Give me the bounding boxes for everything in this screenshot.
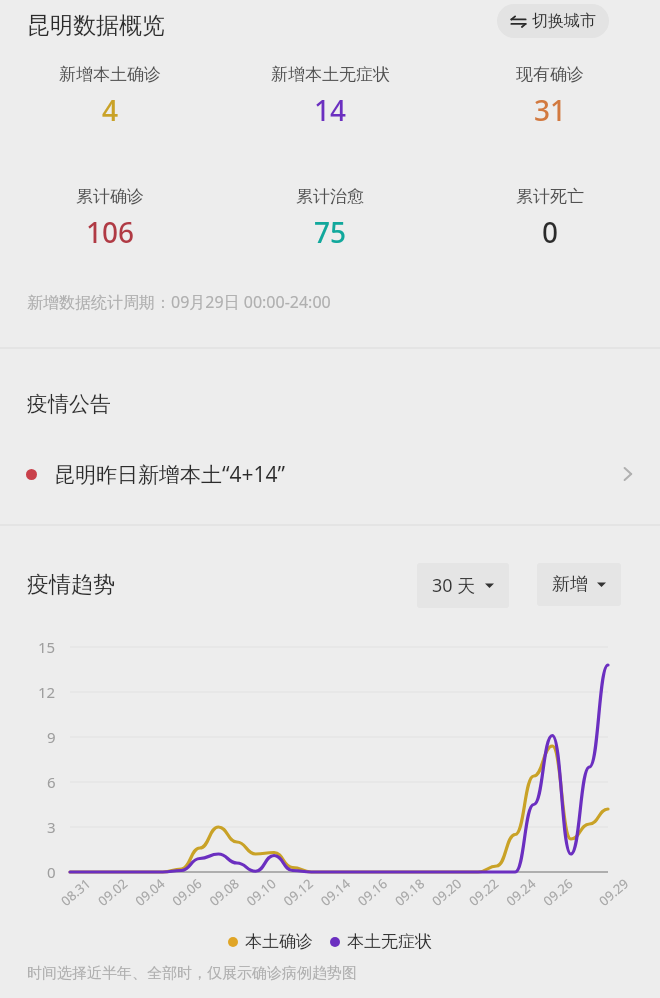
staticText: 疫情公告	[27, 391, 111, 417]
staticText: 昆明昨日新增本土“4+14”	[54, 460, 286, 489]
staticText: 累计治愈	[296, 186, 364, 207]
staticText: 新增本土确诊	[59, 64, 161, 85]
staticText: 累计死亡	[516, 186, 584, 207]
button[interactable]: 累计治愈	[220, 186, 440, 251]
button[interactable]: 累计确诊	[0, 186, 220, 251]
staticText: 切换城市	[532, 11, 596, 31]
staticText: 现有确诊	[516, 64, 584, 85]
staticText: 14	[314, 91, 347, 129]
button[interactable]: 累计死亡	[440, 186, 660, 251]
staticText: 106	[86, 213, 135, 251]
staticText: 昆明数据概览	[27, 11, 165, 40]
button[interactable]: 切换城市	[497, 4, 609, 38]
button[interactable]: 新增	[537, 563, 621, 606]
staticText: 疫情趋势	[27, 571, 115, 599]
button[interactable]: 新增本土确诊	[0, 64, 220, 129]
staticText: 累计确诊	[76, 186, 144, 207]
button[interactable]: 新增本土无症状	[220, 64, 440, 129]
staticText: 4	[102, 91, 119, 129]
staticText: 0	[542, 213, 559, 251]
staticText: 30 天	[432, 573, 476, 598]
staticText: 新增数据统计周期：09月29日 00:00-24:00	[27, 291, 331, 313]
button[interactable]: 30 天	[417, 563, 509, 608]
staticText: 新增本土无症状	[271, 64, 390, 85]
button[interactable]: 现有确诊	[440, 64, 660, 129]
staticText: 本土确诊	[245, 931, 313, 952]
staticText: 新增	[552, 573, 588, 596]
staticText: 31	[534, 91, 567, 129]
button[interactable]: 昆明昨日新增本土“4+14”	[0, 445, 660, 503]
staticText: 本土无症状	[347, 931, 432, 952]
staticText: 时间选择近半年、全部时，仅展示确诊病例趋势图	[27, 964, 357, 983]
staticText: 75	[314, 213, 347, 251]
